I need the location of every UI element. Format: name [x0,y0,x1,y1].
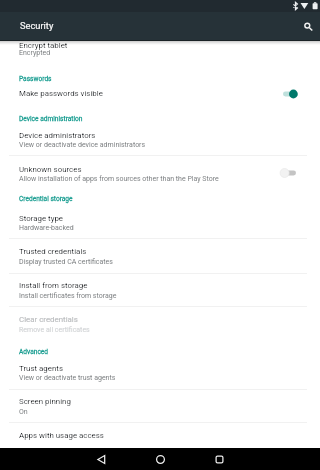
staticText: Trusted credentials [19,247,87,256]
staticText: Make passwords visible [19,89,103,98]
staticText: Screen pinning [19,397,71,406]
button[interactable]: Device administrators [0,125,320,155]
button[interactable]: Home [143,448,177,470]
button[interactable]: Unknown sources [0,156,320,189]
button[interactable]: Search [292,13,320,41]
button[interactable]: Screen pinning [0,390,320,421]
staticText: Allow installation of apps from sources … [19,175,219,183]
staticText: Install from storage [19,281,88,290]
staticText: Device administrators [19,131,96,140]
staticText: Credential storage [19,195,73,203]
staticText: Storage type [19,214,64,223]
button[interactable]: Encrypt tablet [0,40,320,62]
button[interactable]: Apps with usage access [0,423,320,448]
staticText: Encrypt tablet [19,41,68,50]
staticText: Device administration [19,115,83,123]
staticText: Apps with usage access [19,431,104,440]
staticText: On [19,408,28,416]
button[interactable]: Storage type [0,205,320,237]
button[interactable]: Back [84,448,118,470]
button[interactable]: Clear credentials [0,307,320,338]
button[interactable]: Trusted credentials [0,239,320,273]
staticText: Passwords [19,75,52,83]
staticText: Display trusted CA certificates [19,258,113,266]
staticText: Encrypted [19,49,51,57]
staticText: Unknown sources [19,165,82,174]
staticText: Trust agents [19,364,63,373]
staticText: View or deactivate trust agents [19,374,116,382]
staticText: View or deactivate device administrators [19,141,146,149]
staticText: Remove all certificates [19,326,90,334]
staticText: Security [20,20,54,31]
button[interactable]: Make passwords visible [0,84,320,104]
staticText: Install certificates from storage [19,292,117,300]
button[interactable]: Trust agents [0,358,320,388]
staticText: Hardware-backed [19,224,74,232]
button[interactable]: Recents [202,448,236,470]
staticText: Advanced [19,348,49,356]
button[interactable]: Install from storage [0,274,320,305]
staticText: Clear credentials [19,315,78,324]
